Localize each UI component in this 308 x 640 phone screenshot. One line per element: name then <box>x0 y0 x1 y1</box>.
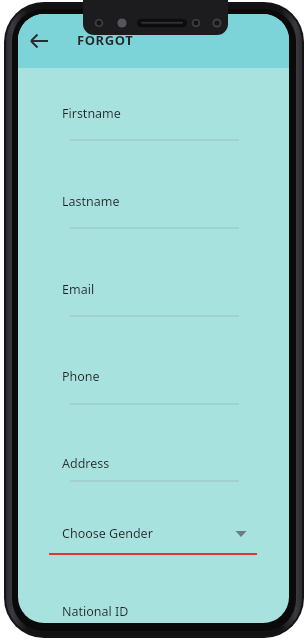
staticText: Phone <box>62 368 100 385</box>
button[interactable]: National ID <box>62 603 232 625</box>
staticText: Email <box>62 281 95 298</box>
staticText: National ID <box>62 603 129 620</box>
button[interactable]: Back <box>24 30 56 54</box>
button[interactable]: Choose Gender <box>49 520 257 554</box>
staticText: Address <box>62 455 110 472</box>
staticText: FORGOT <box>77 31 134 49</box>
button[interactable]: Address <box>62 455 232 477</box>
button[interactable]: Lastname <box>62 193 232 215</box>
button[interactable]: Email <box>62 281 232 303</box>
staticText: Choose Gender <box>62 525 153 542</box>
staticText: Firstname <box>62 105 121 122</box>
staticText: Lastname <box>62 193 120 210</box>
button[interactable]: Phone <box>62 368 232 390</box>
button[interactable]: Firstname <box>62 105 232 127</box>
